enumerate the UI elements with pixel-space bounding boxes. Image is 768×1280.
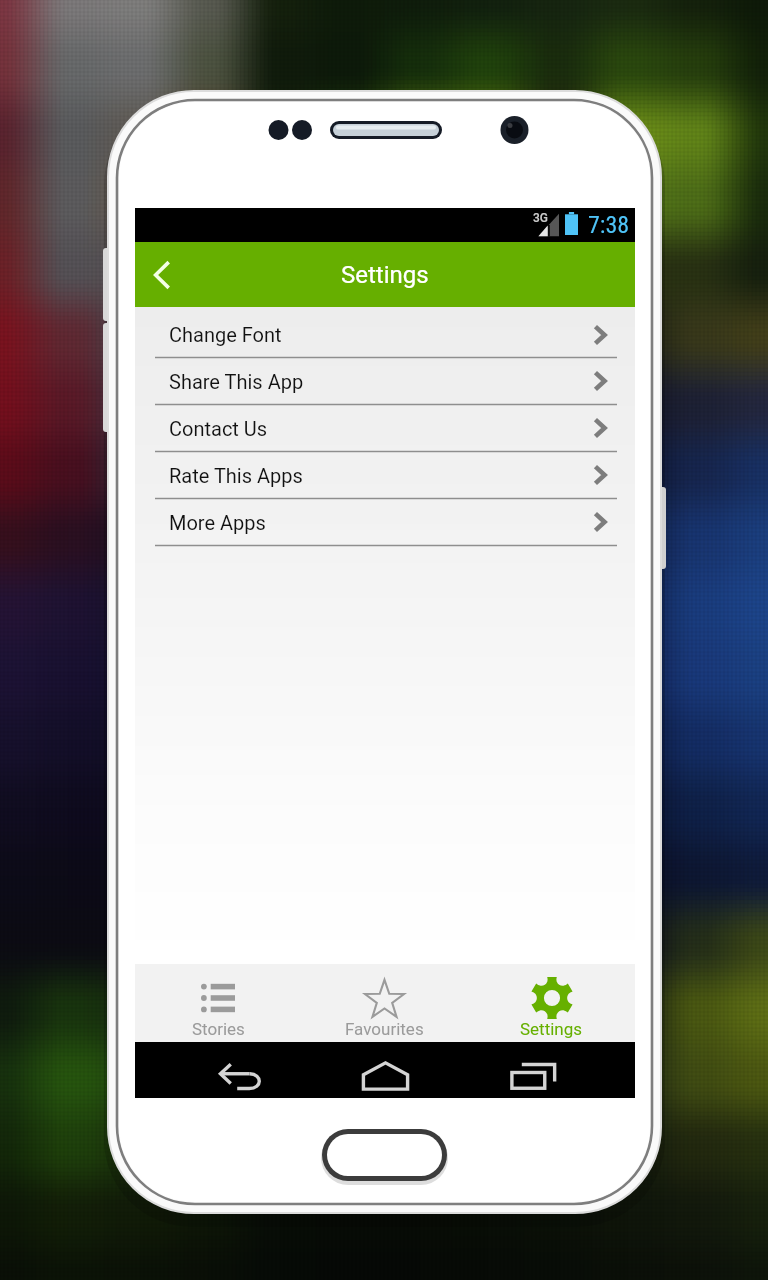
- button[interactable]: More Apps: [135, 499, 635, 545]
- staticText: Contact Us: [169, 417, 268, 440]
- button[interactable]: Share This App: [135, 358, 635, 404]
- staticText: Favourites: [345, 1019, 424, 1039]
- button[interactable]: Settings: [468, 964, 635, 1042]
- staticText: More Apps: [169, 511, 266, 534]
- button[interactable]: Stories: [135, 964, 301, 1042]
- button[interactable]: Recent apps: [481, 1042, 585, 1098]
- staticText: Share This App: [169, 370, 304, 393]
- staticText: Settings: [341, 261, 429, 289]
- button[interactable]: Favourites: [301, 964, 468, 1042]
- button[interactable]: Home: [333, 1042, 437, 1098]
- staticText: Settings: [520, 1019, 583, 1039]
- button[interactable]: Contact Us: [135, 405, 635, 451]
- staticText: 3G: [533, 211, 548, 225]
- staticText: 7:38: [588, 211, 630, 239]
- button[interactable]: Rate This Apps: [135, 452, 635, 498]
- staticText: Rate This Apps: [169, 464, 303, 487]
- button[interactable]: Back: [135, 242, 189, 307]
- staticText: Stories: [192, 1019, 245, 1039]
- button[interactable]: Back: [189, 1042, 293, 1098]
- staticText: Change Font: [169, 323, 282, 346]
- button[interactable]: Change Font: [135, 312, 635, 357]
